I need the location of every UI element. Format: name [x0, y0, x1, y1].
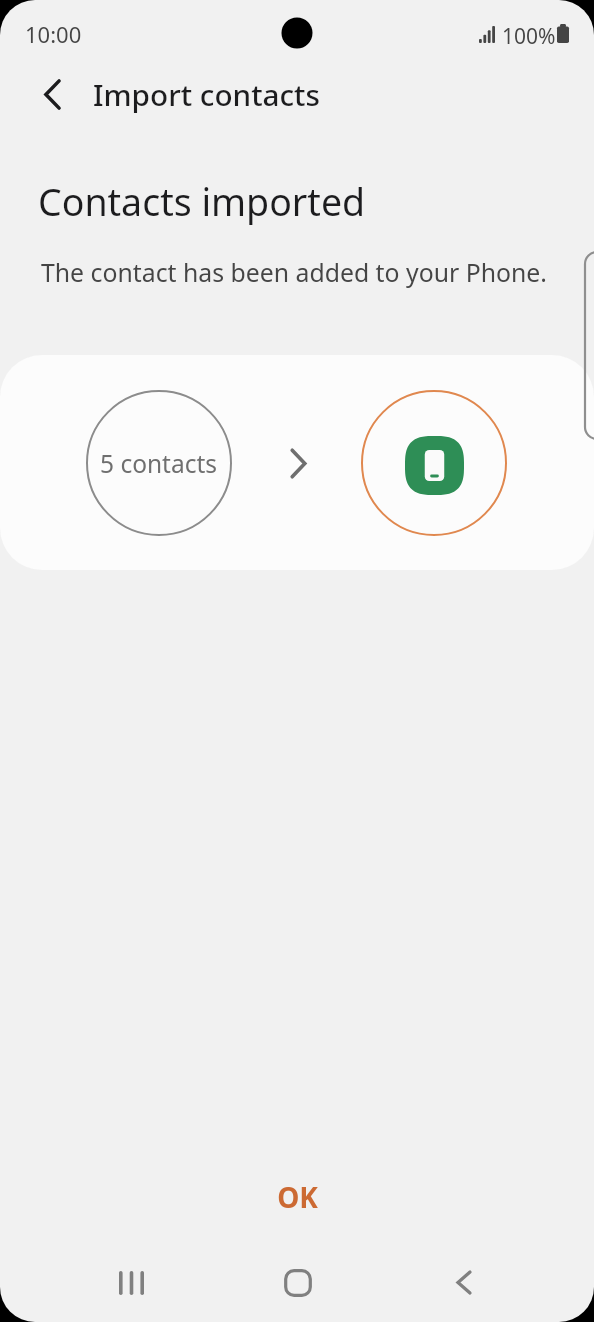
staticText: Contacts imported	[38, 176, 366, 227]
button[interactable]: Back	[27, 70, 75, 118]
button[interactable]: Home	[264, 1249, 331, 1316]
staticText: The contact has been added to your Phone…	[41, 255, 547, 289]
staticText: Import contacts	[93, 74, 320, 114]
button[interactable]: Recent apps	[98, 1249, 165, 1316]
staticText: 100%	[502, 22, 556, 51]
staticText: OK	[277, 1178, 318, 1216]
button[interactable]: OK	[0, 1166, 594, 1228]
button[interactable]: Back	[430, 1249, 497, 1316]
staticText: 10:00	[25, 19, 82, 49]
staticText: 5 contacts	[100, 447, 218, 480]
